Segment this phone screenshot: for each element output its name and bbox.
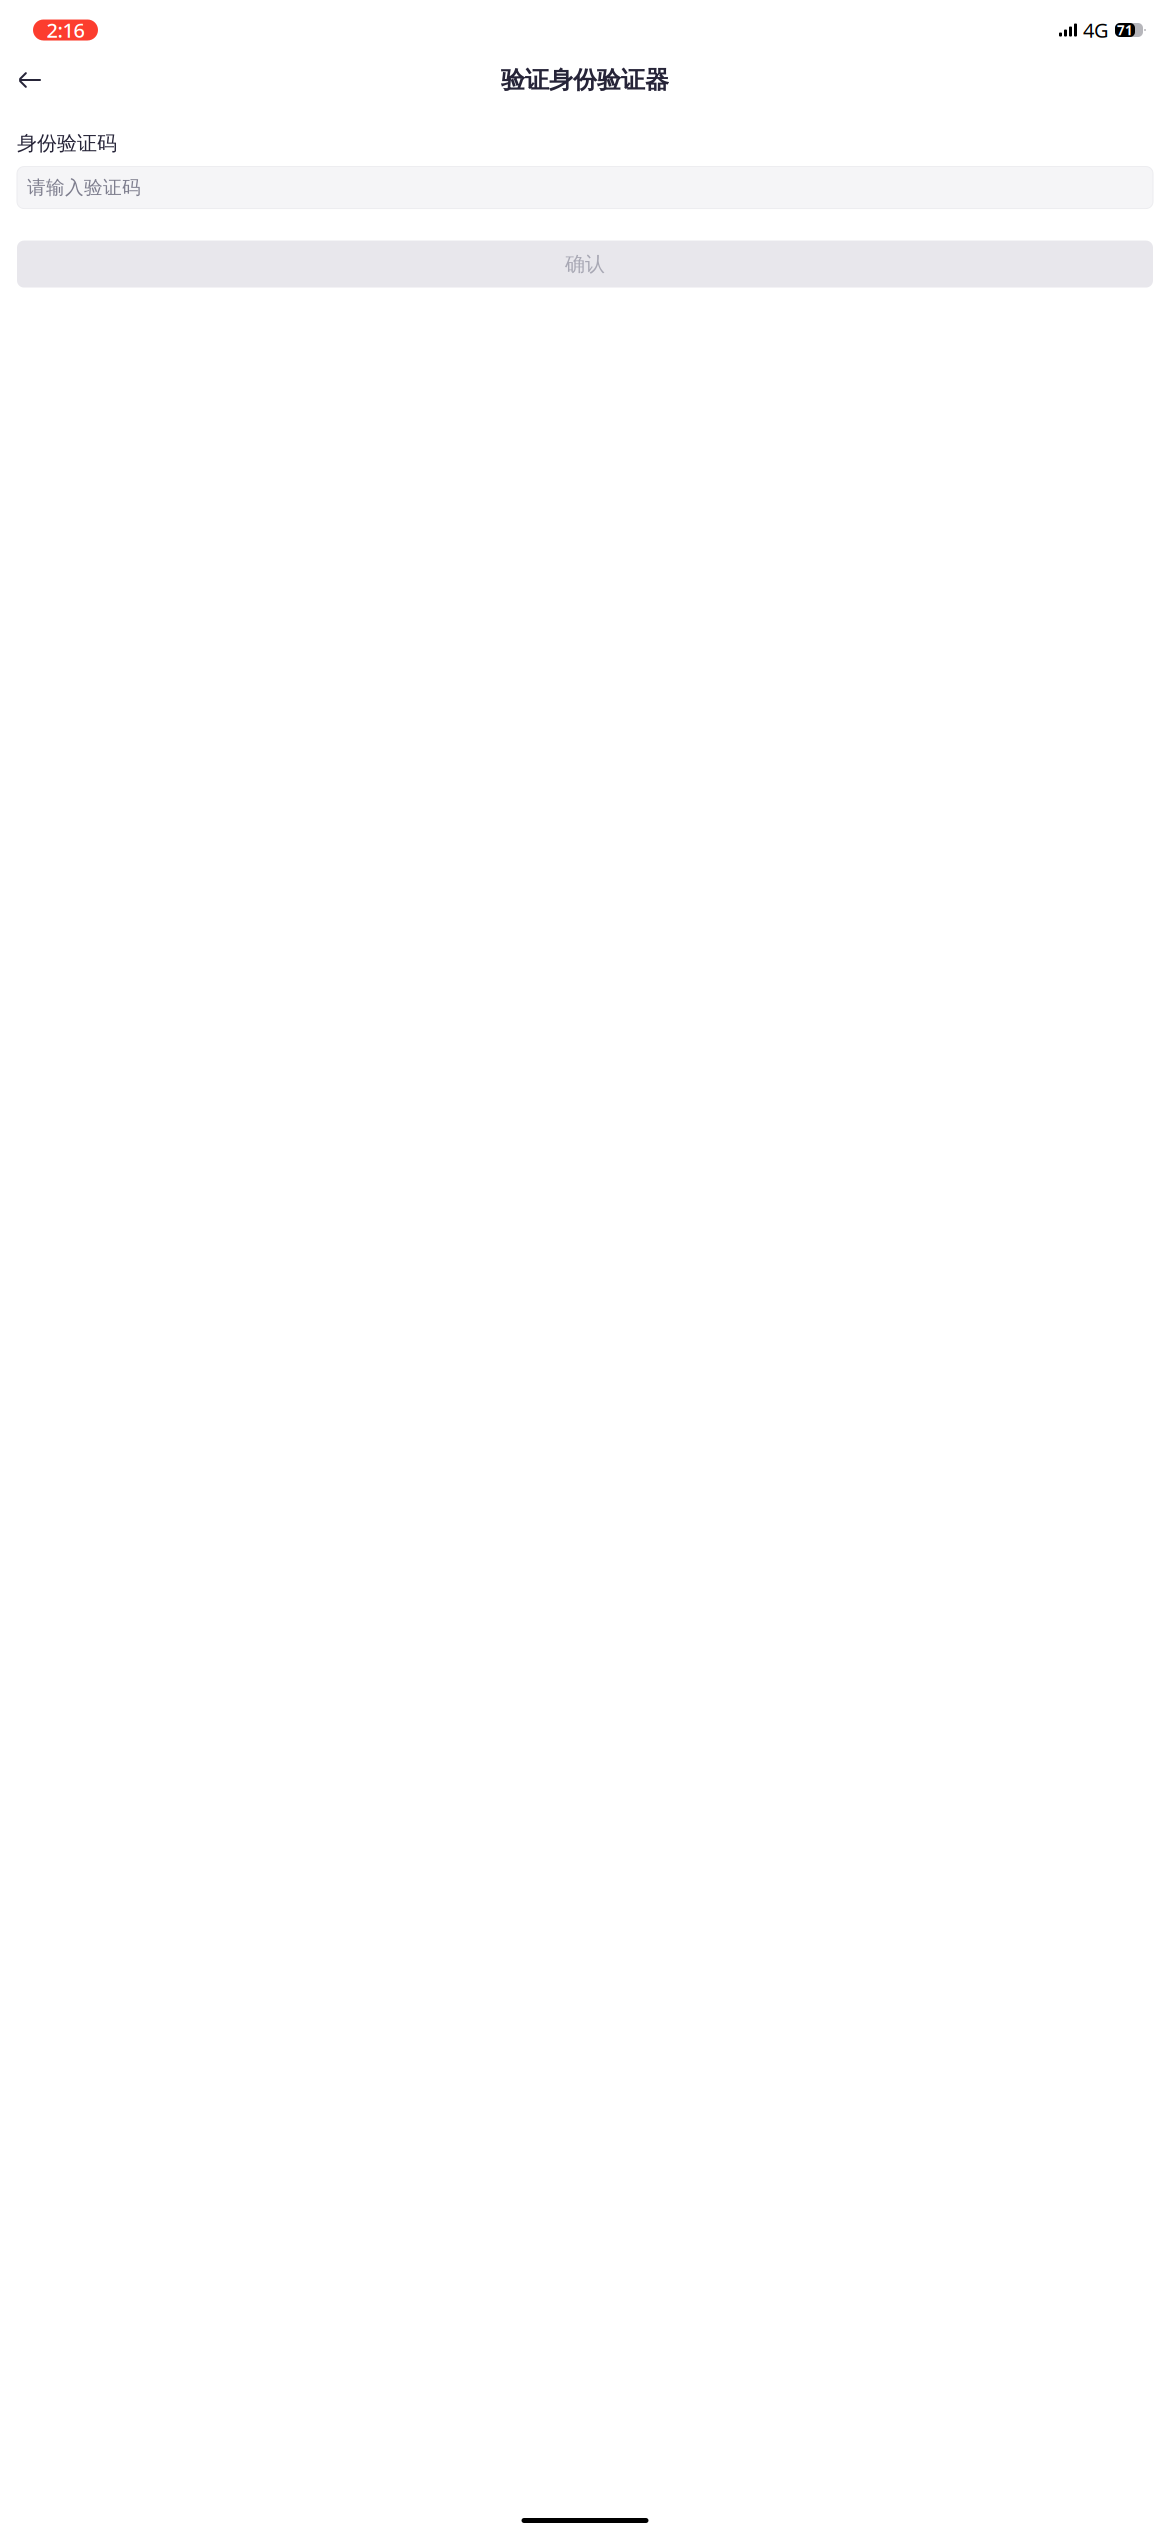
staticText: 4G [1083, 17, 1109, 43]
staticText: 确认 [565, 252, 605, 276]
button[interactable]: 返回 [8, 58, 52, 102]
staticText: 身份验证码 [17, 131, 117, 156]
staticText: 71 [1117, 21, 1133, 39]
staticText: 2:16 [46, 17, 84, 43]
button[interactable]: 确认 [17, 241, 1153, 288]
staticText: 请输入验证码 [27, 176, 141, 199]
staticText: 验证身份验证器 [501, 65, 669, 95]
